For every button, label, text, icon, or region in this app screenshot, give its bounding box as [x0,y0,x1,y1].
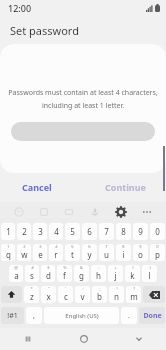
button[interactable]: More options [134,202,160,221]
staticText: x [46,291,51,302]
staticText: c [64,291,68,302]
staticText: 4 [54,226,59,237]
button[interactable]: Settings [108,202,134,221]
button[interactable]: @ [9,265,23,282]
staticText: - [98,265,100,270]
staticText: including at least 1 letter. [0,101,166,111]
staticText: 9 [139,244,142,249]
staticText: * [30,286,33,291]
staticText: 5 [70,226,75,237]
button[interactable]: ( [125,265,140,282]
staticText: 3 [38,226,43,237]
button[interactable]: English (US) [44,307,119,324]
button[interactable]: ' [58,286,73,303]
staticText: m [130,291,138,302]
staticText: f [63,270,66,281]
button[interactable]: Stickers [31,202,56,221]
staticText: 6 [87,226,92,237]
staticText: n [114,291,119,302]
button[interactable]: Home [56,328,111,350]
staticText: 7 [104,226,109,237]
button[interactable]: 2 [17,244,31,261]
button[interactable]: Emoji [6,202,31,221]
button[interactable]: " [41,286,56,303]
button[interactable]: 8 [116,244,131,261]
button[interactable]: Voice input [82,202,108,221]
button[interactable]: 7 [99,244,114,261]
staticText: r [54,249,58,260]
staticText: 8 [121,226,126,237]
button[interactable] [11,122,155,141]
staticText: % [63,265,67,270]
button[interactable]: * [24,286,39,303]
button[interactable]: % [57,265,72,282]
button[interactable]: 4 [49,223,63,240]
staticText: 0 [156,244,159,249]
staticText: 0 [155,226,160,237]
button[interactable]: Done [139,307,165,324]
button[interactable]: Recents [0,328,56,350]
button[interactable]: Back [111,328,166,350]
staticText: 4 [55,244,58,249]
staticText: b [97,291,102,302]
button[interactable]: 2 [17,223,31,240]
button[interactable]: GIF [56,202,82,221]
button[interactable]: 0 [150,244,165,261]
staticText: ( [132,265,134,270]
button[interactable]: ! [109,286,124,303]
staticText: e [38,249,43,260]
button[interactable]: 1 [1,244,15,261]
staticText: d [46,270,51,281]
button[interactable]: 3 [33,223,47,240]
staticText: $ [47,265,50,270]
staticText: j [114,270,117,281]
button[interactable]: 5 [65,244,80,261]
staticText: 1 [7,244,10,249]
button[interactable]: 3 [33,244,47,261]
button[interactable]: !#1 [1,307,24,324]
staticText: u [104,249,109,260]
button[interactable]: # [25,265,39,282]
button[interactable]: & [74,265,89,282]
button[interactable]: Cancel [18,177,56,197]
button[interactable]: . [121,307,137,324]
staticText: ) [149,265,151,270]
button[interactable]: 9 [133,244,148,261]
button[interactable]: Backspace [143,286,165,303]
button[interactable]: 7 [99,223,114,240]
staticText: ? [133,286,135,291]
staticText: & [80,265,83,270]
button[interactable]: Continue [101,177,150,197]
staticText: 2 [23,244,26,249]
staticText: !#1 [7,311,18,321]
button[interactable]: : [75,286,90,303]
staticText: # [31,265,34,270]
staticText: + [114,265,117,270]
staticText: " [48,286,50,291]
staticText: 5 [71,244,74,249]
button[interactable]: 0 [150,223,165,240]
button[interactable]: - [91,265,106,282]
button[interactable]: 9 [133,223,148,240]
staticText: i [122,249,125,260]
staticText: v [80,291,85,302]
button[interactable]: ; [92,286,107,303]
staticText: Passwords must contain at least 4 charac… [6,88,160,98]
staticText: 8 [122,244,125,249]
button[interactable]: 5 [65,223,80,240]
button[interactable]: 8 [116,223,131,240]
button[interactable]: ) [142,265,157,282]
button[interactable]: 6 [82,223,97,240]
staticText: 6 [88,244,91,249]
button[interactable]: , [26,307,42,324]
button[interactable]: 1 [1,223,15,240]
staticText: t [71,249,74,260]
button[interactable]: ? [126,286,141,303]
button[interactable]: + [108,265,123,282]
button[interactable]: 6 [82,244,97,261]
staticText: l [148,270,151,281]
button[interactable]: 4 [49,244,63,261]
staticText: Done [143,311,162,321]
button[interactable]: Shift [1,286,22,303]
button[interactable]: $ [41,265,55,282]
